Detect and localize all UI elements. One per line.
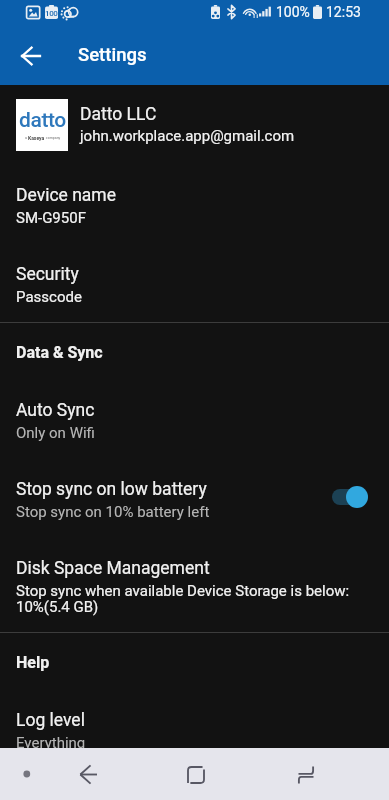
staticText: 100 bbox=[45, 9, 58, 18]
button[interactable]: Stop sync on low battery bbox=[0, 458, 389, 537]
staticText: Everything bbox=[16, 734, 86, 751]
button[interactable]: Disk Space Management bbox=[0, 537, 389, 632]
staticText: Stop sync on 10% battery left bbox=[16, 503, 210, 520]
staticText: company bbox=[45, 136, 61, 140]
staticText: SM-G950F bbox=[16, 209, 86, 226]
button[interactable]: Recent apps bbox=[282, 752, 330, 798]
button[interactable]: Log level bbox=[0, 689, 389, 768]
staticText: john.workplace.app@gmail.com bbox=[80, 127, 295, 145]
staticText: Kaseya bbox=[28, 135, 45, 141]
staticText: Data & Sync bbox=[16, 343, 103, 362]
staticText: Settings bbox=[78, 44, 147, 66]
staticText: Log level bbox=[16, 710, 85, 731]
button[interactable]: Security bbox=[0, 243, 389, 322]
staticText: 12:53 bbox=[326, 4, 361, 20]
button[interactable]: Auto Sync bbox=[0, 379, 389, 458]
button[interactable]: datto bbox=[0, 85, 389, 164]
staticText: Passcode bbox=[16, 288, 82, 305]
staticText: a bbox=[25, 136, 28, 140]
button[interactable]: Home bbox=[172, 752, 220, 798]
staticText: 100% bbox=[276, 4, 310, 20]
staticText: Only on Wifi bbox=[16, 424, 95, 441]
staticText: datto bbox=[19, 108, 66, 133]
staticText: Stop sync on low battery bbox=[16, 479, 207, 500]
button[interactable]: Navigate up bbox=[7, 31, 55, 79]
button[interactable]: Back bbox=[64, 751, 112, 797]
staticText: Help bbox=[16, 653, 50, 672]
staticText: Security bbox=[16, 264, 79, 285]
staticText: Auto Sync bbox=[16, 400, 95, 421]
button[interactable]: Device name bbox=[0, 164, 389, 243]
staticText: Datto LLC bbox=[80, 104, 157, 125]
staticText: Disk Space Management bbox=[16, 558, 210, 579]
staticText: Device name bbox=[16, 185, 116, 206]
staticText: Stop sync when available Device Storage … bbox=[16, 582, 373, 615]
